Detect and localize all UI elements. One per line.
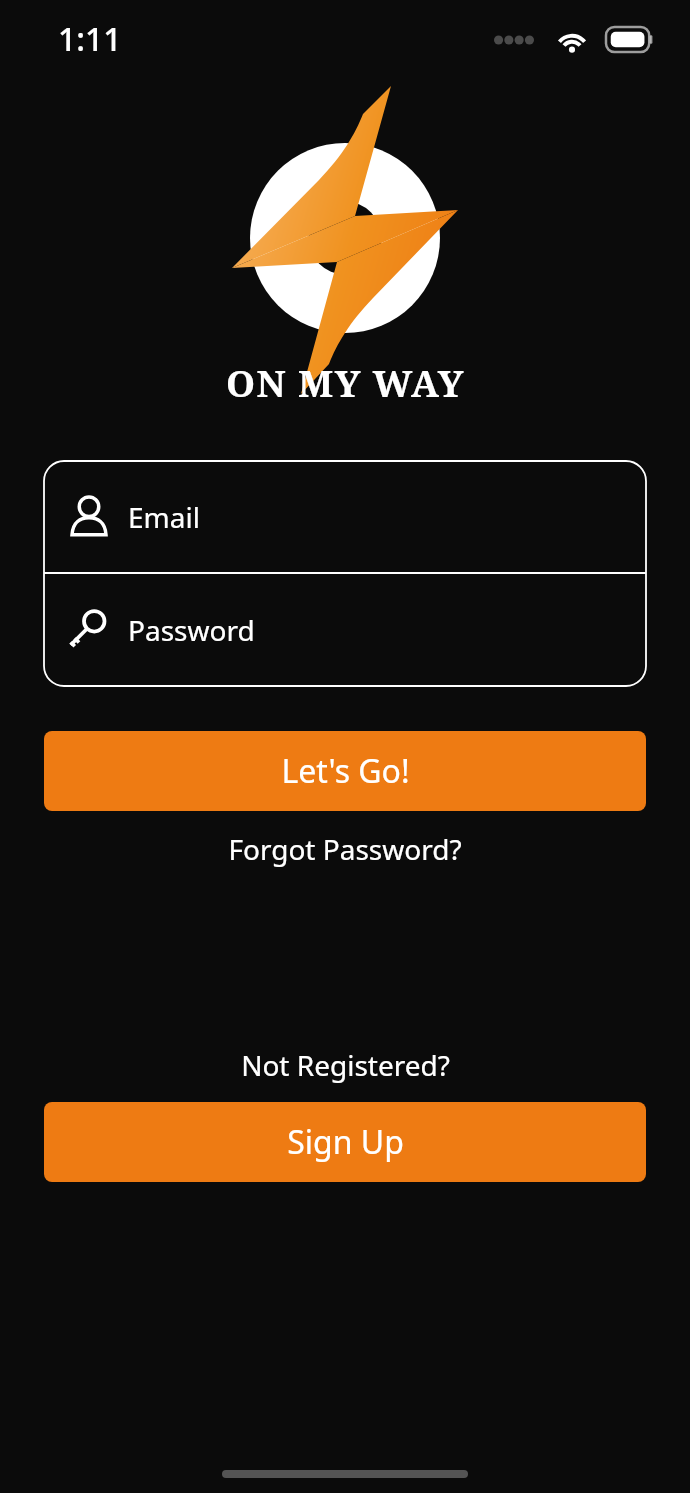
button[interactable]: Let's Go! (44, 731, 646, 811)
button[interactable]: Password (44, 574, 646, 686)
staticText: Let's Go! (281, 749, 410, 793)
staticText: Forgot Password? (228, 830, 462, 868)
button[interactable]: Email (44, 461, 646, 572)
staticText: 1:11 (58, 17, 122, 61)
button[interactable]: Forgot Password? (0, 824, 690, 874)
button[interactable]: Sign Up (44, 1102, 646, 1182)
staticText: Sign Up (287, 1120, 404, 1164)
staticText: Password (128, 611, 255, 649)
staticText: ON MY WAY (226, 357, 465, 407)
staticText: Email (128, 498, 200, 536)
staticText: Not Registered? (241, 1046, 450, 1084)
